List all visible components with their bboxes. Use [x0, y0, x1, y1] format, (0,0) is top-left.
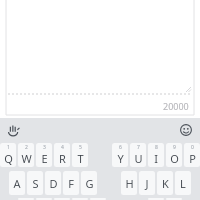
button[interactable]: G [81, 171, 97, 195]
button[interactable]: 1 [0, 143, 16, 167]
button[interactable]: J [139, 171, 155, 195]
staticText: D [49, 176, 58, 191]
staticText: R [59, 151, 66, 166]
staticText: 8 [155, 144, 158, 151]
staticText: P [189, 151, 196, 166]
staticText: O [170, 151, 179, 166]
button[interactable]: 9 [166, 143, 182, 167]
staticText: Q [4, 151, 13, 166]
button[interactable]: 4 [54, 143, 70, 167]
staticText: S [32, 176, 39, 191]
staticText: T [77, 151, 84, 166]
staticText: 1 [7, 144, 10, 151]
button[interactable]: F [63, 171, 79, 195]
staticText: G [85, 176, 94, 191]
button[interactable]: A [9, 171, 25, 195]
staticText: 3 [43, 144, 46, 151]
staticText: U [134, 151, 143, 166]
staticText: 6 [119, 144, 122, 151]
button[interactable]: 3 [36, 143, 52, 167]
button[interactable]: D [45, 171, 61, 195]
button[interactable]: Handwriting input [4, 121, 22, 139]
staticText: 7 [137, 144, 140, 151]
staticText: 20000 [163, 100, 189, 112]
button[interactable]: 8 [148, 143, 164, 167]
staticText: Y [117, 151, 124, 166]
button[interactable]: 6 [112, 143, 128, 167]
staticText: 0 [191, 144, 194, 151]
button[interactable]: S [27, 171, 43, 195]
button[interactable]: 7 [130, 143, 146, 167]
staticText: A [13, 176, 21, 191]
staticText: L [180, 176, 186, 191]
staticText: E [41, 151, 48, 166]
staticText: I [154, 151, 158, 166]
staticText: F [68, 176, 74, 191]
staticText: 5 [79, 144, 82, 151]
staticText: K [162, 176, 169, 191]
staticText: H [125, 176, 134, 191]
button[interactable]: Emoji [177, 121, 195, 139]
staticText: W [21, 151, 32, 166]
staticText: 9 [173, 144, 176, 151]
button[interactable]: 0 [184, 143, 200, 167]
staticText: 4 [61, 144, 64, 151]
staticText: 2 [25, 144, 28, 151]
button[interactable]: 2 [18, 143, 34, 167]
button[interactable]: 5 [72, 143, 88, 167]
button[interactable]: K [157, 171, 173, 195]
button[interactable]: L [175, 171, 191, 195]
staticText: J [145, 176, 149, 191]
button[interactable]: H [121, 171, 137, 195]
